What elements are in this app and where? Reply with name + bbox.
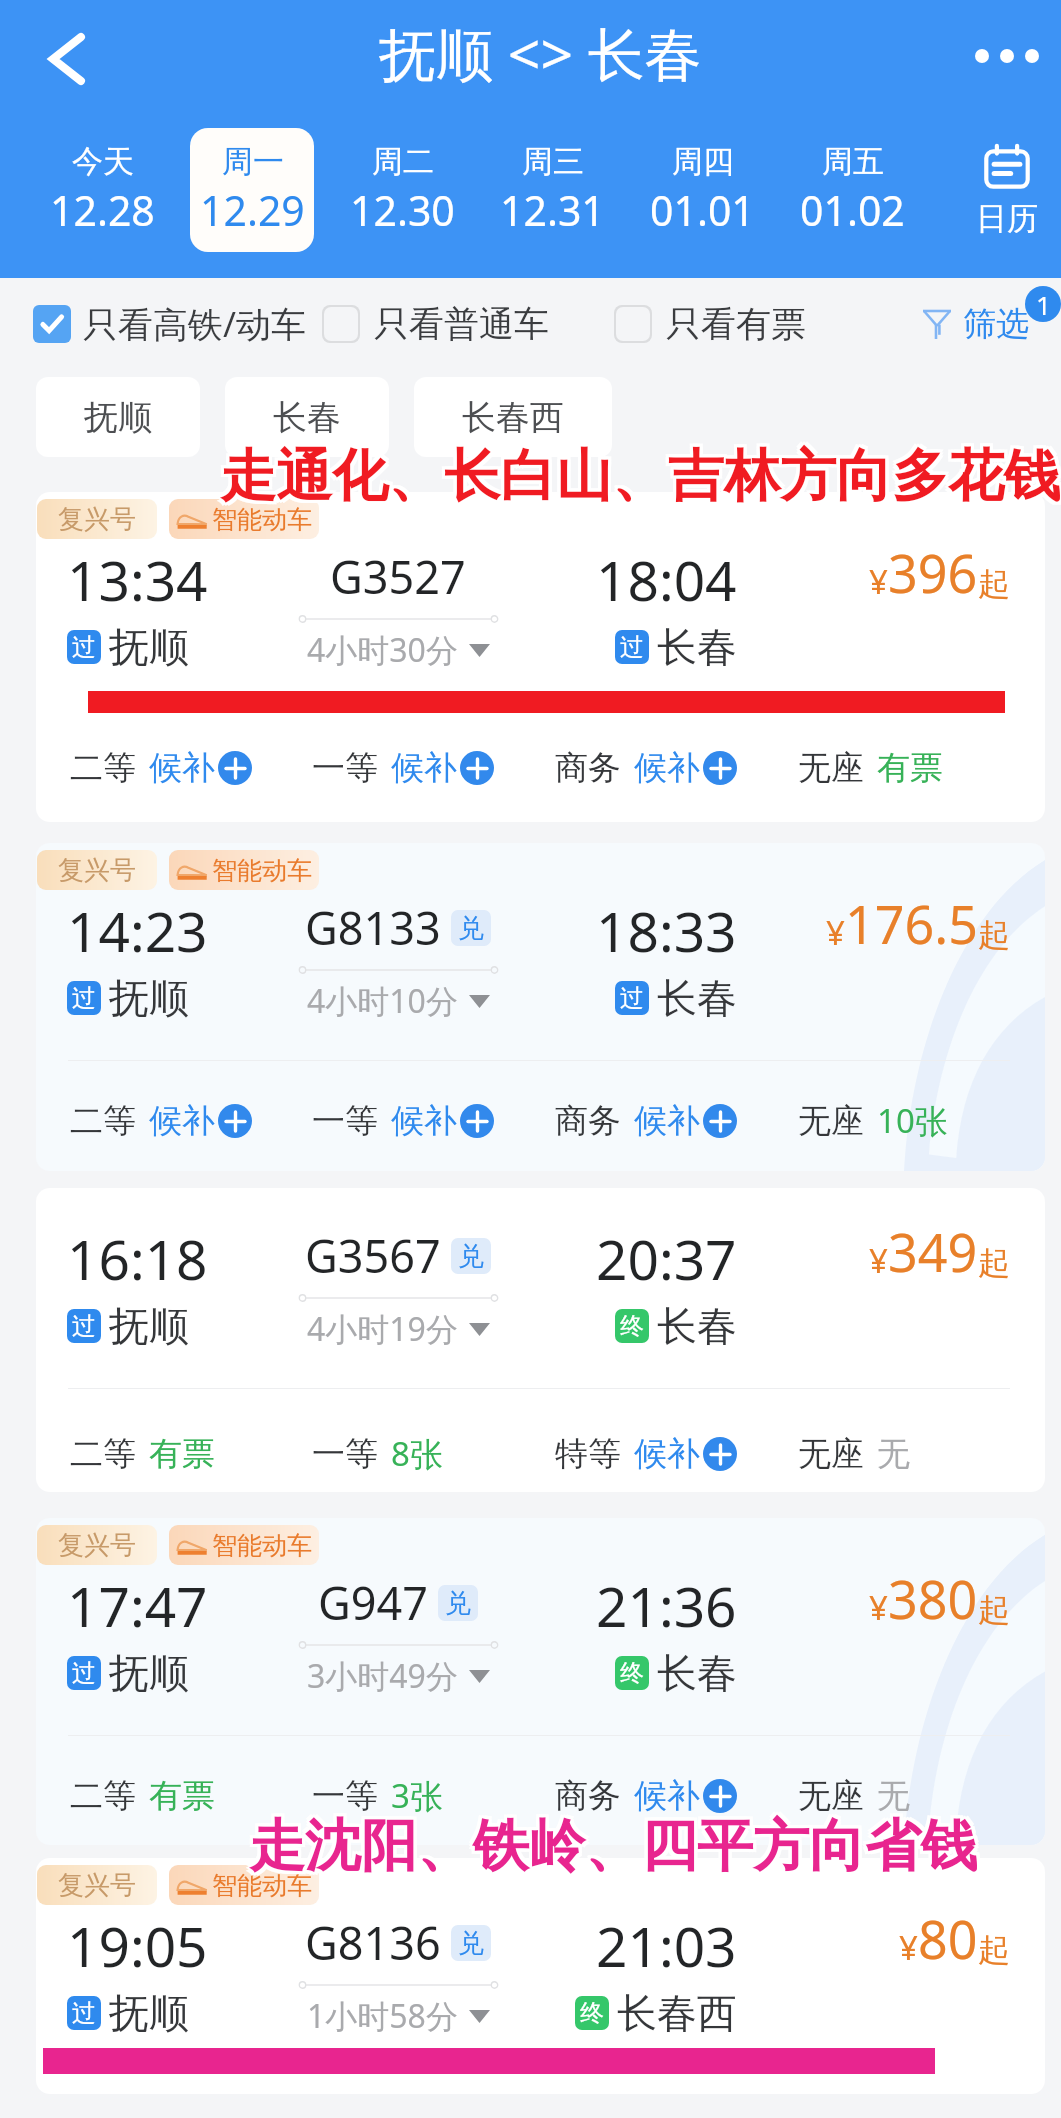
button[interactable]: 16:18 bbox=[36, 1188, 1045, 1492]
staticText: 过 bbox=[72, 983, 96, 1013]
button[interactable]: 商务 bbox=[555, 1100, 798, 1142]
staticText: 二等 bbox=[70, 1775, 136, 1817]
staticText: 商务 bbox=[555, 1775, 621, 1817]
button[interactable]: 二等 bbox=[70, 1100, 312, 1142]
button[interactable]: 周二 bbox=[340, 128, 464, 252]
button[interactable]: 无座 bbox=[798, 1098, 1017, 1143]
staticText: 4小时10分 bbox=[307, 979, 458, 1023]
staticText: 抚顺 bbox=[84, 396, 152, 439]
staticText: 12.31 bbox=[500, 182, 605, 238]
staticText: 一等 bbox=[312, 747, 378, 789]
button[interactable]: 一等 bbox=[312, 1773, 555, 1818]
staticText: 4小时30分 bbox=[307, 628, 458, 672]
staticText: 筛选 bbox=[963, 303, 1029, 345]
staticText: 长春 bbox=[657, 973, 737, 1023]
button[interactable]: 二等 bbox=[70, 1775, 312, 1817]
staticText: 走通化、长白山、吉林方向多花钱 bbox=[223, 444, 1061, 515]
staticText: ¥ bbox=[869, 1585, 888, 1630]
button[interactable]: 商务 bbox=[555, 747, 798, 789]
staticText: 走沈阳、铁岭、四平方向省钱 bbox=[249, 1811, 977, 1882]
staticText: 走沈阳、铁岭、四平方向省钱 bbox=[252, 1814, 980, 1885]
staticText: 周四 bbox=[672, 142, 734, 181]
staticText: 候补 bbox=[634, 1775, 700, 1817]
staticText: 349 bbox=[888, 1216, 978, 1287]
staticText: 日历 bbox=[976, 199, 1038, 238]
button[interactable]: 特等 bbox=[555, 1433, 798, 1475]
button[interactable]: 只看高铁/动车 bbox=[33, 300, 307, 348]
staticText: 智能动车 bbox=[212, 1870, 312, 1901]
button[interactable]: 无座 bbox=[798, 1433, 1017, 1475]
staticText: 周五 bbox=[822, 142, 884, 181]
staticText: 一等 bbox=[312, 1100, 378, 1142]
staticText: ¥ bbox=[869, 1238, 888, 1283]
staticText: ¥ bbox=[826, 910, 845, 955]
staticText: 智能动车 bbox=[212, 1530, 312, 1561]
staticText: 复兴号 bbox=[58, 1869, 136, 1902]
staticText: 长春西 bbox=[462, 396, 564, 439]
staticText: 候补 bbox=[391, 1100, 457, 1142]
staticText: 终 bbox=[620, 1311, 644, 1341]
button[interactable]: Back bbox=[32, 22, 106, 96]
button[interactable]: 无座 bbox=[798, 1775, 1017, 1817]
button[interactable]: 只看有票 bbox=[614, 302, 806, 346]
button[interactable]: Calendar bbox=[927, 118, 1061, 278]
staticText: 01.01 bbox=[650, 182, 755, 238]
button[interactable]: 二等 bbox=[70, 1433, 312, 1475]
staticText: 1 bbox=[1036, 287, 1051, 322]
staticText: 起 bbox=[978, 1930, 1010, 1970]
staticText: 14:23 bbox=[67, 893, 208, 968]
button[interactable]: 周四 bbox=[640, 128, 764, 252]
staticText: 抚顺 bbox=[109, 1648, 189, 1698]
button[interactable]: 复兴号 bbox=[36, 492, 1045, 822]
staticText: 过 bbox=[620, 983, 644, 1013]
button[interactable]: 长春 bbox=[225, 377, 389, 457]
staticText: 特等 bbox=[555, 1433, 621, 1475]
button[interactable]: 周五 bbox=[790, 128, 914, 252]
staticText: 候补 bbox=[391, 747, 457, 789]
button[interactable]: 一等 bbox=[312, 1431, 555, 1476]
button[interactable]: Filter bbox=[923, 303, 1029, 345]
staticText: 16:18 bbox=[67, 1221, 208, 1296]
staticText: 商务 bbox=[555, 1100, 621, 1142]
button[interactable]: 复兴号 bbox=[36, 1858, 1045, 2094]
staticText: G8136 bbox=[305, 1912, 441, 1973]
staticText: 19:05 bbox=[67, 1908, 208, 1983]
staticText: 一等 bbox=[312, 1433, 378, 1475]
staticText: 周二 bbox=[372, 142, 434, 181]
button[interactable]: 周三 bbox=[490, 128, 614, 252]
staticText: G8133 bbox=[305, 897, 441, 958]
staticText: 走通化、长白山、吉林方向多花钱 bbox=[217, 441, 1057, 512]
button[interactable]: More options bbox=[966, 15, 1048, 97]
button[interactable]: 二等 bbox=[70, 747, 312, 789]
staticText: 走通化、长白山、吉林方向多花钱 bbox=[220, 441, 1060, 512]
staticText: 只看高铁/动车 bbox=[83, 300, 307, 348]
staticText: 二等 bbox=[70, 1433, 136, 1475]
button[interactable]: 复兴号 bbox=[36, 843, 1045, 1171]
staticText: 走沈阳、铁岭、四平方向省钱 bbox=[246, 1811, 974, 1882]
button[interactable]: 无座 bbox=[798, 747, 1017, 789]
staticText: 380 bbox=[888, 1563, 978, 1634]
staticText: 12.29 bbox=[200, 182, 305, 238]
button[interactable]: 只看普通车 bbox=[322, 302, 549, 346]
button[interactable]: 抚顺 bbox=[36, 377, 200, 457]
staticText: 兑 bbox=[458, 1927, 484, 1960]
staticText: 有票 bbox=[149, 1775, 215, 1817]
staticText: G3527 bbox=[330, 546, 466, 607]
staticText: ¥ bbox=[869, 559, 888, 604]
staticText: G947 bbox=[318, 1572, 428, 1633]
button[interactable]: 今天 bbox=[40, 128, 164, 252]
staticText: 走沈阳、铁岭、四平方向省钱 bbox=[246, 1808, 974, 1879]
button[interactable]: 一等 bbox=[312, 747, 555, 789]
staticText: 18:04 bbox=[596, 542, 737, 617]
button[interactable]: 周一 bbox=[190, 128, 314, 252]
staticText: 176.5 bbox=[845, 888, 978, 959]
button[interactable]: 复兴号 bbox=[36, 1518, 1045, 1845]
button[interactable]: 商务 bbox=[555, 1775, 798, 1817]
button[interactable]: 一等 bbox=[312, 1100, 555, 1142]
staticText: 抚顺 bbox=[109, 622, 189, 672]
staticText: 长春 bbox=[657, 622, 737, 672]
staticText: 过 bbox=[72, 632, 96, 662]
button[interactable]: 长春西 bbox=[414, 377, 612, 457]
staticText: 80 bbox=[918, 1903, 978, 1974]
staticText: 智能动车 bbox=[212, 504, 312, 535]
